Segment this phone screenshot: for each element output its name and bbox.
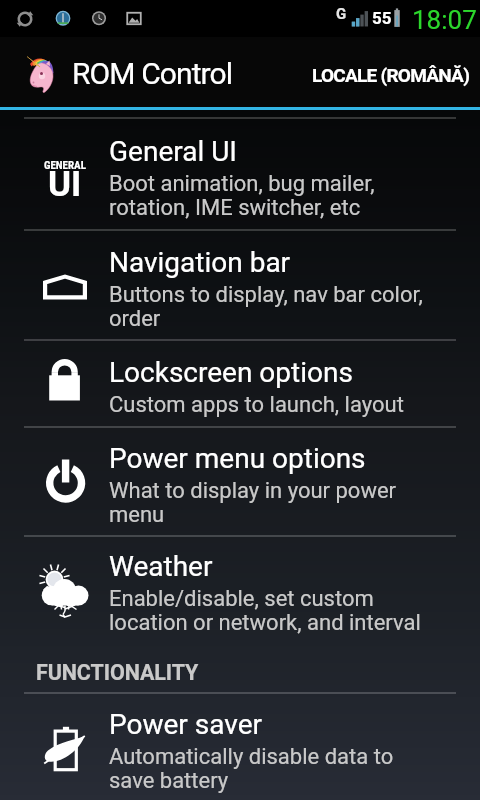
- button[interactable]: Power saver: [0, 694, 480, 800]
- staticText: G: [336, 5, 347, 23]
- button[interactable]: Weather: [0, 537, 480, 642]
- staticText: Navigation bar: [109, 246, 291, 279]
- staticText: GENERAL: [44, 159, 86, 172]
- staticText: ROM Control: [72, 56, 233, 91]
- staticText: Buttons to display, nav bar color, order: [109, 282, 423, 331]
- staticText: 55: [372, 8, 392, 28]
- staticText: Lockscreen options: [109, 356, 353, 389]
- staticText: Enable/disable, set custom location or n…: [109, 586, 421, 635]
- button[interactable]: Lockscreen options: [0, 341, 480, 426]
- staticText: LOCALE (ROMÂNĂ): [312, 64, 470, 86]
- staticText: General UI: [109, 135, 237, 168]
- button[interactable]: Power menu options: [0, 428, 480, 535]
- other: App icon: [16, 52, 56, 92]
- staticText: UI: [48, 164, 82, 205]
- staticText: Power saver: [109, 708, 262, 741]
- staticText: Automatically disable data to save batte…: [109, 744, 394, 793]
- button[interactable]: Navigation bar: [0, 231, 480, 339]
- staticText: FUNCTIONALITY: [36, 660, 199, 685]
- button[interactable]: LOCALE (ROMÂNĂ): [300, 46, 480, 98]
- staticText: 18:07: [412, 5, 477, 35]
- staticText: Boot animation, bug mailer, rotation, IM…: [109, 171, 375, 220]
- staticText: What to display in your power menu: [109, 478, 397, 527]
- staticText: Power menu options: [109, 442, 366, 475]
- staticText: Custom apps to launch, layout: [109, 392, 404, 418]
- staticText: Weather: [109, 550, 213, 583]
- button[interactable]: GENERAL: [0, 119, 480, 229]
